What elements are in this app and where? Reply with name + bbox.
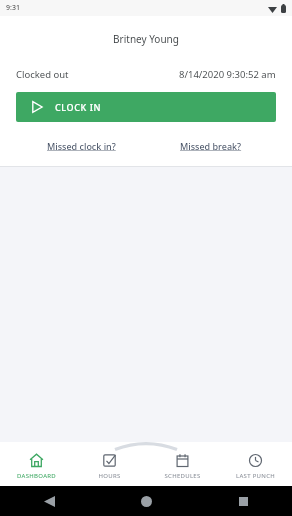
staticText: 9:31 [6, 3, 20, 13]
staticText: Clocked out [16, 68, 69, 81]
button[interactable]: Missed clock in? [16, 140, 146, 152]
staticText: CLOCK IN [55, 101, 102, 113]
staticText: SCHEDULES [164, 472, 201, 480]
staticText: DASHBOARD [17, 472, 56, 480]
button[interactable]: Last punch [219, 447, 292, 486]
button[interactable]: Dashboard [0, 447, 73, 486]
button[interactable]: Back [0, 486, 98, 516]
staticText: Missed break? [180, 140, 242, 152]
button[interactable]: Missed break? [146, 140, 276, 152]
staticText: Britney Young [0, 32, 292, 46]
staticText: 8/14/2020 9:30:52 am [179, 68, 276, 81]
button[interactable]: Hours [73, 447, 146, 486]
staticText: LAST PUNCH [236, 472, 275, 480]
staticText: Missed clock in? [47, 140, 116, 152]
button[interactable]: Home [98, 486, 195, 516]
button[interactable]: Schedules [146, 447, 219, 486]
staticText: HOURS [98, 472, 121, 480]
button[interactable]: CLOCK IN [16, 92, 276, 122]
button[interactable]: Recents [195, 486, 292, 516]
